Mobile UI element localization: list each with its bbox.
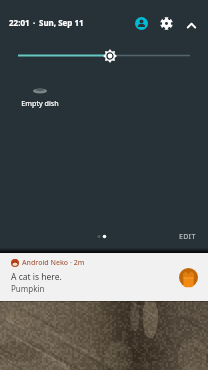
- button[interactable]: Android Neko · 2m: [0, 253, 208, 301]
- staticText: A cat is here.: [11, 271, 62, 283]
- staticText: 22:01: [9, 17, 30, 28]
- button[interactable]: EDIT: [171, 229, 204, 245]
- staticText: ·: [33, 17, 36, 28]
- button[interactable]: User account: [130, 12, 153, 35]
- button[interactable]: Brightness: [0, 44, 208, 66]
- button[interactable]: Collapse: [180, 14, 203, 37]
- staticText: Sun, Sep 11: [39, 17, 84, 28]
- staticText: EDIT: [179, 232, 196, 242]
- staticText: Android Neko · 2m: [22, 258, 85, 268]
- button[interactable]: Settings: [155, 12, 178, 35]
- button[interactable]: Empty dish: [14, 86, 66, 108]
- staticText: Empty dish: [21, 98, 59, 108]
- staticText: Pumpkin: [11, 283, 45, 294]
